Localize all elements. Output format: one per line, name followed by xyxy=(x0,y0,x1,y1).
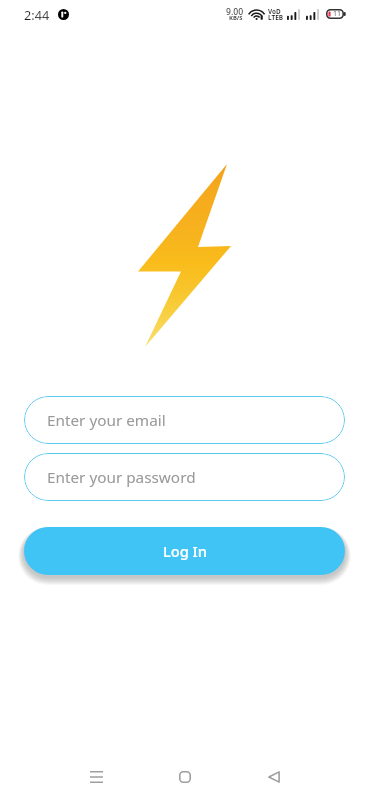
staticText: LTEB xyxy=(268,13,283,22)
staticText: 9.00 xyxy=(226,6,244,18)
staticText: VoD xyxy=(268,7,281,16)
staticText: 11 xyxy=(333,9,342,19)
button[interactable]: Log In xyxy=(24,527,345,575)
button[interactable]: Home xyxy=(161,754,209,800)
staticText: 2:44 xyxy=(24,6,50,23)
staticText: Enter your password xyxy=(47,467,196,488)
staticText: Enter your email xyxy=(47,410,166,431)
button[interactable]: Enter your password xyxy=(24,453,345,501)
button[interactable]: Recents xyxy=(72,754,120,800)
button[interactable]: Enter your email xyxy=(24,396,345,444)
staticText: KB/S xyxy=(229,14,243,22)
button[interactable]: Back xyxy=(250,754,298,800)
staticText: Log In xyxy=(163,541,207,561)
